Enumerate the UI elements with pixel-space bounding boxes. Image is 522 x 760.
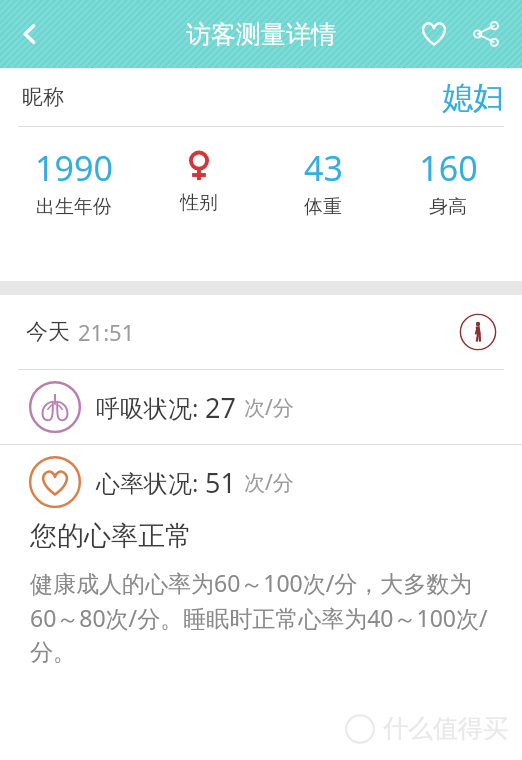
- button[interactable]: 昵称: [0, 68, 522, 126]
- button[interactable]: Back: [0, 0, 60, 68]
- staticText: 体重: [304, 195, 342, 219]
- button[interactable]: Share: [460, 8, 512, 60]
- staticText: 性别: [180, 191, 218, 215]
- button[interactable]: 1990: [18, 145, 130, 219]
- button[interactable]: 43: [267, 145, 379, 219]
- staticText: 出生年份: [36, 195, 112, 219]
- staticText: 身高: [429, 195, 467, 219]
- button[interactable]: Gender female: [143, 145, 255, 215]
- other: Posture: [458, 312, 498, 352]
- staticText: 昵称: [22, 84, 64, 110]
- staticText: 21:51: [78, 317, 135, 347]
- staticText: 1990: [35, 145, 113, 191]
- staticText: 媳妇: [442, 78, 504, 117]
- button[interactable]: 160: [392, 145, 504, 219]
- staticText: 今天: [26, 318, 70, 346]
- staticText: 访客测量详情: [186, 19, 336, 50]
- button[interactable]: 今天: [0, 295, 522, 369]
- button[interactable]: 心率状况:: [0, 445, 522, 519]
- staticText: 43: [304, 145, 343, 191]
- staticText: 您的心率正常: [30, 519, 192, 553]
- staticText: 什么值得买: [383, 713, 508, 744]
- staticText: 心率状况:: [96, 466, 205, 499]
- staticText: 呼吸状况:: [96, 391, 205, 424]
- staticText: 健康成人的心率为60～100次/分，大多数为60～80次/分。睡眠时正常心率为4…: [30, 567, 496, 667]
- staticText: 160: [419, 145, 478, 191]
- staticText: 51: [205, 464, 236, 501]
- button[interactable]: 呼吸状况:: [0, 370, 522, 444]
- staticText: 次/分: [244, 393, 294, 422]
- staticText: 次/分: [244, 468, 294, 497]
- button[interactable]: Favorite: [408, 8, 460, 60]
- staticText: 27: [205, 389, 236, 426]
